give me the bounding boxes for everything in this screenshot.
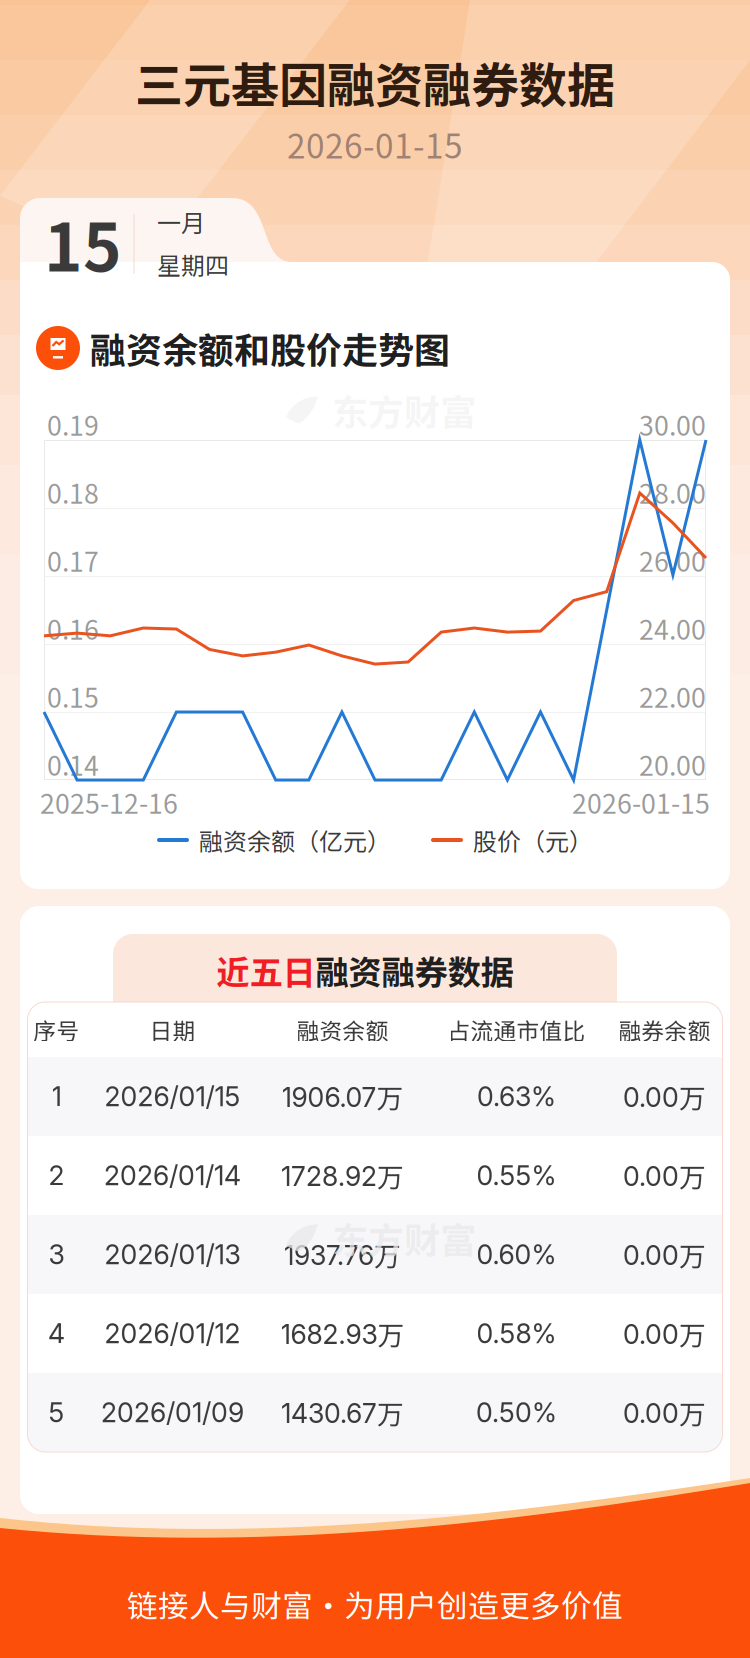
staticText: 20.00 (639, 745, 706, 783)
staticText: 28.00 (639, 473, 706, 511)
staticText: 融资余额（亿元） (199, 823, 391, 857)
staticText: 30.00 (639, 405, 706, 443)
staticText: 2026/01/13 (104, 1238, 240, 1271)
staticText: 2026/01/12 (104, 1317, 240, 1350)
staticText: 26.00 (639, 541, 706, 579)
staticText: 0.15 (47, 677, 99, 715)
staticText: 0.55% (476, 1159, 556, 1192)
staticText: 0.00万 (623, 1393, 706, 1432)
staticText: 0.63% (477, 1080, 556, 1113)
staticText: 4 (48, 1317, 65, 1350)
staticText: 星期四 (157, 247, 229, 282)
staticText: 1430.67万 (281, 1393, 404, 1432)
staticText: 0.58% (476, 1317, 556, 1350)
staticText: 一月 (157, 204, 205, 239)
staticText: 2026/01/14 (104, 1159, 241, 1192)
staticText: 0.16 (47, 609, 99, 647)
staticText: 24.00 (639, 609, 706, 647)
staticText: 0.50% (476, 1396, 557, 1429)
staticText: 股价（元） (473, 823, 593, 857)
staticText: 2025-12-16 (40, 783, 178, 821)
staticText: 东方财富 (332, 1212, 476, 1264)
staticText: 1 (51, 1080, 61, 1113)
staticText: 序号 (33, 1013, 79, 1046)
staticText: 2 (48, 1159, 64, 1192)
staticText: 5 (48, 1396, 64, 1429)
staticText: 东方财富 (332, 384, 476, 436)
staticText: 0.00万 (623, 1235, 706, 1274)
staticText: 日期 (149, 1013, 195, 1046)
staticText: 15 (44, 196, 122, 290)
staticText: 融资余额和股价走势图 (90, 322, 450, 374)
staticText: 1728.92万 (281, 1156, 404, 1195)
staticText: 0.14 (47, 745, 99, 783)
staticText: 0.18 (47, 473, 99, 511)
staticText: 0.00万 (623, 1314, 706, 1353)
staticText: 0.60% (476, 1238, 556, 1271)
staticText: 链接人与财富·为用户创造更多价值 (127, 1582, 623, 1626)
staticText: 0.00万 (623, 1156, 706, 1195)
staticText: 1682.93万 (280, 1314, 404, 1353)
staticText: 1937.76万 (284, 1235, 401, 1274)
staticText: 3 (48, 1238, 64, 1271)
staticText: 占流通市值比 (447, 1013, 585, 1046)
staticText: 0.17 (47, 541, 99, 579)
staticText: 融券余额 (618, 1013, 710, 1046)
staticText: 1906.07万 (281, 1077, 403, 1116)
staticText: 22.00 (639, 677, 706, 715)
staticText: 近五日 (216, 946, 315, 994)
staticText: 0.00万 (623, 1077, 706, 1116)
staticText: 0.19 (47, 405, 99, 443)
staticText: 融资余额 (296, 1013, 388, 1046)
staticText: 三元基因融资融券数据 (135, 47, 615, 117)
staticText: 2026-01-15 (572, 783, 710, 821)
staticText: 2026/01/09 (101, 1396, 244, 1429)
staticText: 2026-01-15 (287, 120, 463, 168)
staticText: 融资融券数据 (315, 946, 513, 994)
staticText: 2026/01/15 (104, 1080, 240, 1113)
